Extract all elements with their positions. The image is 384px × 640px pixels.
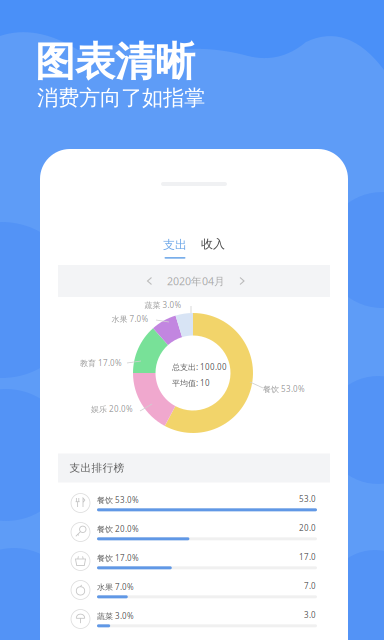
staticText: 7.0 — [304, 581, 316, 591]
button[interactable]: Previous month — [141, 271, 159, 291]
button[interactable]: 水果 7.0% — [58, 575, 330, 604]
staticText: 支出 — [163, 237, 187, 252]
staticText: 餐饮 53.0% — [97, 495, 139, 505]
staticText: 水果 7.0% — [97, 582, 134, 592]
staticText: 3.0 — [304, 610, 316, 620]
button[interactable]: Next month — [233, 271, 251, 291]
staticText: 17.0 — [299, 552, 316, 562]
staticText: 消费方向了如指掌 — [37, 85, 205, 111]
staticText: 餐饮 20.0% — [97, 524, 139, 534]
staticText: 53.0 — [299, 494, 316, 504]
button[interactable]: 餐饮 53.0% — [58, 488, 330, 517]
staticText: 总支出: 100.00 — [172, 362, 227, 372]
staticText: 餐饮 17.0% — [97, 553, 139, 563]
button[interactable]: 餐饮 17.0% — [58, 546, 330, 575]
button[interactable]: 蔬菜 3.0% — [58, 604, 330, 633]
staticText: 蔬菜 3.0% — [97, 611, 134, 621]
staticText: 20.0 — [299, 523, 316, 533]
staticText: 支出排行榜 — [69, 461, 124, 474]
staticText: 水果 7.0% — [111, 314, 148, 324]
button[interactable]: 支出 — [157, 235, 193, 261]
staticText: 平均值: 10 — [172, 378, 210, 388]
staticText: 教育 17.0% — [80, 358, 122, 368]
staticText: 收入 — [201, 237, 225, 251]
staticText: 娱乐 20.0% — [91, 404, 133, 414]
button[interactable]: 餐饮 20.0% — [58, 517, 330, 546]
staticText: 图表清晰 — [35, 37, 195, 86]
staticText: 餐饮 53.0% — [263, 384, 305, 394]
staticText: 蔬菜 3.0% — [144, 300, 181, 310]
button[interactable]: 收入 — [195, 231, 231, 257]
staticText: 2020年04月 — [167, 274, 225, 288]
